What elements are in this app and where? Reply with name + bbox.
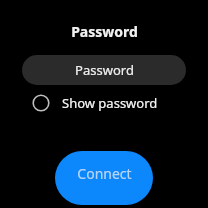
button[interactable]: Connect [55,151,153,205]
staticText: Password [75,61,134,79]
button[interactable]: Show password [22,91,186,115]
button[interactable]: Password input field [22,55,186,85]
staticText: Connect [77,164,132,183]
staticText: Show password [62,94,158,112]
staticText: Password [71,22,138,41]
